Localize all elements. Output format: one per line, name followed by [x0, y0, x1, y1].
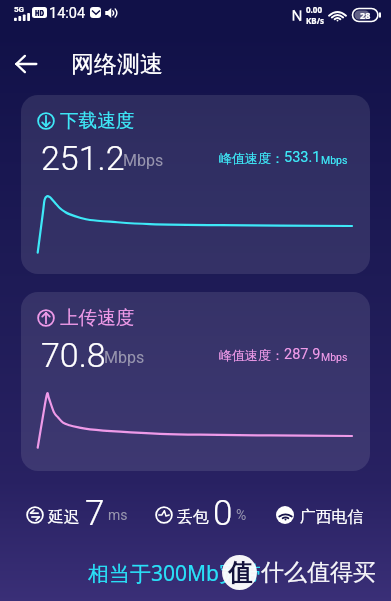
staticText: 丢包 [177, 507, 209, 527]
staticText: 0 [213, 493, 233, 527]
staticText: % [236, 507, 247, 523]
staticText: Mbps [123, 151, 164, 170]
staticText: 28 [360, 9, 371, 21]
staticText: 峰值速度： [219, 347, 284, 363]
staticText: 251.2 [41, 138, 125, 178]
staticText: 7 [85, 493, 105, 527]
staticText: 下载速度 [60, 109, 135, 132]
staticText: 值 [228, 558, 252, 588]
button[interactable]: 广西电信 [276, 498, 364, 532]
staticText: Mbps [321, 351, 348, 363]
staticText: 相当于300Mb宽带 [88, 559, 261, 588]
button[interactable]: 下载速度 [21, 95, 370, 274]
staticText: KB/s [306, 15, 324, 26]
staticText: 上传速度 [60, 306, 135, 329]
button[interactable]: Back [12, 50, 39, 77]
button[interactable]: 延迟 [26, 498, 128, 532]
staticText: 网络测速 [71, 50, 163, 79]
staticText: 287.9 [284, 346, 321, 363]
staticText: 什么值得买 [261, 558, 376, 587]
staticText: Mbps [104, 348, 145, 367]
staticText: 广西电信 [300, 507, 364, 527]
staticText: 533.1 [284, 149, 321, 166]
button[interactable]: 上传速度 [21, 292, 370, 471]
staticText: Mbps [321, 154, 348, 166]
staticText: 5G [14, 5, 25, 14]
staticText: ms [108, 507, 128, 523]
staticText: 峰值速度： [219, 150, 284, 166]
staticText: 70.8 [41, 335, 106, 375]
staticText: 延迟 [48, 507, 80, 527]
staticText: 0.00 [306, 4, 322, 15]
button[interactable]: 丢包 [155, 498, 247, 532]
staticText: 14:04 [49, 5, 86, 22]
